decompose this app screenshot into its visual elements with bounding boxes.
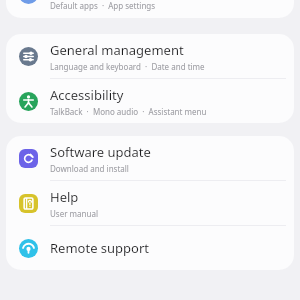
staticText: General management xyxy=(50,41,184,59)
staticText: Help xyxy=(50,188,79,206)
other: General management xyxy=(19,47,38,66)
other: Software update xyxy=(19,149,38,168)
staticText: User manual xyxy=(50,208,98,219)
other: Help xyxy=(19,194,38,213)
staticText: Language and keyboard · Date and time xyxy=(50,61,205,72)
staticText: Download and install xyxy=(50,163,129,174)
button[interactable]: Software update xyxy=(6,136,294,181)
staticText: Accessibility xyxy=(50,86,124,104)
staticText: Software update xyxy=(50,143,151,161)
button[interactable]: Help xyxy=(6,181,294,226)
staticText: TalkBack · Mono audio · Assistant menu xyxy=(50,106,207,117)
button[interactable]: General management xyxy=(6,34,294,79)
button[interactable]: Remote support xyxy=(6,226,294,270)
staticText: Remote support xyxy=(50,239,150,257)
other: Remote support xyxy=(19,239,38,258)
button[interactable]: Default apps · App settings xyxy=(6,0,294,18)
staticText: Default apps · App settings xyxy=(50,0,156,11)
button[interactable]: Accessibility xyxy=(6,79,294,123)
other: Accessibility xyxy=(19,92,38,111)
